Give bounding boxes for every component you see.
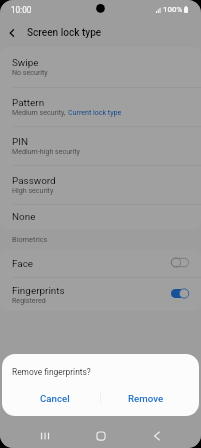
- staticText: High security: [12, 186, 54, 194]
- button[interactable]: Navigate up: [0, 21, 24, 45]
- button[interactable]: On: [171, 288, 189, 299]
- button[interactable]: Face: [0, 250, 201, 277]
- staticText: Remove: [128, 393, 164, 404]
- staticText: Biometrics: [12, 235, 48, 244]
- staticText: None: [12, 211, 36, 223]
- staticText: Pattern: [12, 97, 45, 109]
- staticText: 100%: [163, 5, 183, 14]
- staticText: Current lock type: [68, 108, 122, 116]
- staticText: PIN: [12, 136, 28, 148]
- button[interactable]: Off: [171, 257, 189, 268]
- staticText: Medium security,: [12, 108, 68, 116]
- button[interactable]: Password: [0, 166, 201, 204]
- staticText: No security: [12, 68, 48, 76]
- staticText: 10:00: [11, 5, 32, 15]
- button[interactable]: Home: [85, 424, 117, 448]
- staticText: Swipe: [12, 57, 39, 69]
- staticText: Remove fingerprints?: [12, 367, 91, 377]
- button[interactable]: Back: [141, 424, 173, 448]
- button[interactable]: Swipe: [0, 47, 201, 87]
- staticText: Fingerprints: [12, 285, 65, 297]
- staticText: Face: [12, 258, 34, 270]
- button[interactable]: Fingerprints: [0, 278, 201, 311]
- staticText: Screen lock type: [27, 27, 102, 39]
- staticText: Medium-high security: [12, 147, 80, 155]
- button[interactable]: Remove: [101, 387, 191, 409]
- button[interactable]: None: [0, 205, 201, 229]
- staticText: Password: [12, 175, 56, 187]
- button[interactable]: Pattern: [0, 88, 201, 126]
- button[interactable]: Cancel: [10, 387, 100, 409]
- staticText: Cancel: [40, 393, 70, 404]
- staticText: Registered: [12, 296, 46, 304]
- button[interactable]: PIN: [0, 127, 201, 165]
- button[interactable]: Recents: [29, 424, 61, 448]
